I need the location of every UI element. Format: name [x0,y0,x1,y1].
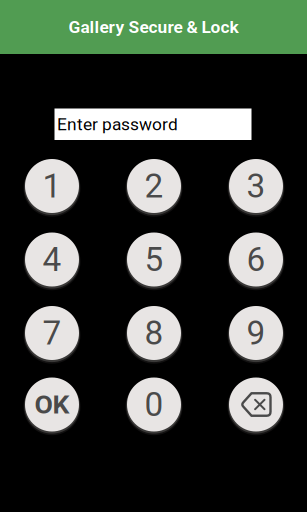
button[interactable]: OK [25,377,79,431]
button[interactable]: 6 [229,232,283,286]
button[interactable]: 2 [127,159,181,213]
staticText: 4 [42,240,61,279]
button[interactable]: 3 [229,159,283,213]
button[interactable]: 8 [127,306,181,360]
staticText: 3 [246,166,265,206]
staticText: 7 [42,313,61,353]
button[interactable]: 1 [25,159,79,213]
staticText: OK [34,389,69,420]
staticText: 6 [246,240,265,279]
staticText: 8 [144,313,163,353]
button[interactable]: 0 [127,377,181,431]
staticText: 2 [144,166,163,206]
staticText: 5 [144,240,163,279]
button[interactable]: 7 [25,306,79,360]
staticText: 9 [246,313,265,353]
button[interactable]: Delete [229,377,283,431]
staticText: 1 [42,166,61,206]
button[interactable]: 9 [229,306,283,360]
button[interactable]: 4 [25,232,79,286]
staticText: Enter password [57,114,178,134]
staticText: 0 [144,385,163,424]
staticText: Gallery Secure & Lock [68,17,238,37]
button[interactable]: 5 [127,232,181,286]
